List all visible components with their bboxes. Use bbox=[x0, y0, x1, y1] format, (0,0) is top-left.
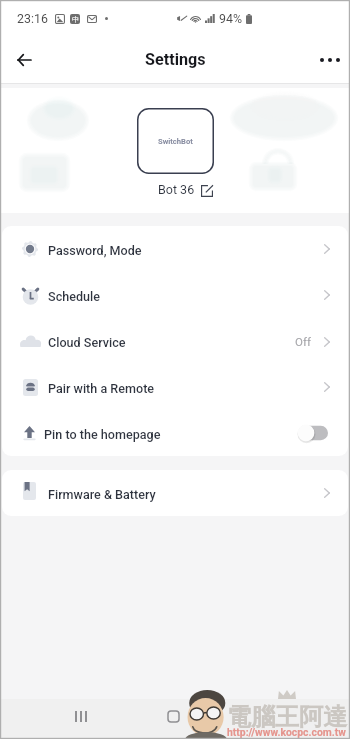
staticText: 94% bbox=[219, 11, 243, 26]
staticText: Firmware & Battery bbox=[48, 487, 156, 502]
button[interactable]: More options bbox=[311, 41, 349, 79]
staticText: http://www.kocpc.com.tw bbox=[227, 726, 346, 738]
button[interactable]: Firmware & Battery bbox=[2, 470, 348, 516]
button[interactable]: Back bbox=[246, 696, 286, 736]
button[interactable]: Rename device bbox=[201, 185, 213, 197]
button[interactable]: Home bbox=[153, 696, 193, 736]
button[interactable]: Password, Mode bbox=[2, 226, 348, 272]
staticText: 電腦王阿達 bbox=[227, 702, 347, 732]
staticText: Pair with a Remote bbox=[48, 381, 155, 396]
staticText: Off bbox=[295, 335, 311, 348]
staticText: 中 bbox=[72, 15, 79, 24]
button[interactable]: Schedule bbox=[2, 272, 348, 318]
staticText: Bot 36 bbox=[158, 182, 195, 197]
button[interactable]: Pair with a Remote bbox=[2, 364, 348, 410]
button[interactable]: Back bbox=[4, 40, 44, 80]
button[interactable]: Pin to the homepage bbox=[2, 410, 348, 456]
button[interactable]: Cloud Service bbox=[2, 318, 348, 364]
staticText: 23:16 bbox=[17, 11, 48, 26]
staticText: Pin to the homepage bbox=[44, 427, 161, 442]
staticText: Password, Mode bbox=[48, 243, 142, 258]
staticText: Cloud Service bbox=[48, 335, 126, 350]
staticText: Schedule bbox=[48, 289, 100, 304]
staticText: Settings bbox=[145, 50, 206, 69]
staticText: SwitchBot bbox=[158, 137, 193, 146]
button[interactable]: Recent apps bbox=[61, 696, 101, 736]
